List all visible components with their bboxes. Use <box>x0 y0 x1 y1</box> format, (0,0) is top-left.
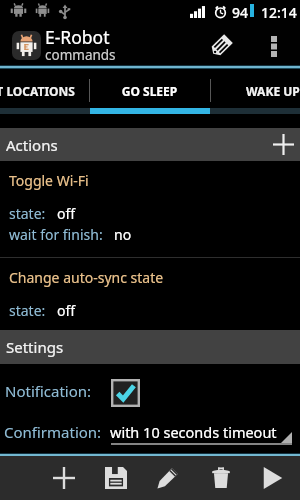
button[interactable]: Change auto-sync state <box>0 258 300 330</box>
staticText: SET LOCATIONS <box>0 83 75 99</box>
staticText: Toggle Wi-Fi <box>9 171 89 190</box>
staticText: 12:14 <box>261 3 297 22</box>
staticText: Notification: <box>5 381 92 401</box>
staticText: off <box>57 301 76 320</box>
staticText: Actions <box>6 135 58 155</box>
button[interactable]: Add <box>42 456 86 500</box>
staticText: with 10 seconds timeout <box>110 422 277 442</box>
button[interactable]: More options <box>258 20 290 66</box>
button[interactable]: Notification: <box>0 372 300 408</box>
button[interactable]: Add action <box>266 128 300 161</box>
button[interactable]: Toggle Wi-Fi <box>0 161 300 257</box>
staticText: no <box>114 225 132 244</box>
staticText: 94 <box>232 3 249 22</box>
button[interactable] <box>89 69 210 108</box>
staticText: state: <box>9 204 46 223</box>
staticText: off <box>57 204 76 223</box>
button[interactable]: Run <box>251 456 295 500</box>
staticText: commands <box>45 46 116 64</box>
button[interactable]: Confirmation: <box>0 412 300 450</box>
staticText: Change auto-sync state <box>9 268 164 287</box>
button[interactable]: Save <box>94 456 138 500</box>
staticText: WAKE UP <box>246 83 300 99</box>
staticText: wait for finish: <box>9 225 103 244</box>
staticText: E-Robot <box>45 25 110 49</box>
button[interactable]: Delete <box>199 456 243 500</box>
staticText: Confirmation: <box>4 422 102 442</box>
staticText: Settings <box>6 337 64 357</box>
staticText: state: <box>9 301 46 320</box>
button[interactable]: Set locations tab <box>0 69 89 108</box>
button[interactable]: Edit <box>146 456 190 500</box>
staticText: GO SLEEP <box>89 83 210 99</box>
button[interactable] <box>210 69 300 108</box>
button[interactable]: Edit commands <box>199 20 243 66</box>
